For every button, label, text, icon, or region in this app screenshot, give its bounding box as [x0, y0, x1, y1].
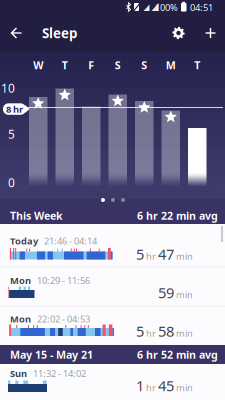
staticText: 45 [158, 376, 174, 395]
staticText: 47 [158, 244, 174, 264]
staticText: 5 [136, 244, 144, 264]
button[interactable]: Mon [0, 305, 225, 345]
staticText: 59 [158, 283, 174, 302]
staticText: F [88, 58, 94, 72]
staticText: May 15 - May 21 [10, 347, 93, 362]
staticText: M [166, 58, 176, 72]
button[interactable] [0, 0, 24, 52]
staticText: 8 hr [6, 103, 23, 115]
button[interactable]: Sun [0, 364, 225, 400]
staticText: 6 hr 52 min avg [137, 347, 218, 362]
staticText: T [194, 58, 200, 72]
staticText: Sleep [42, 24, 77, 42]
staticText: This Week [10, 208, 63, 223]
staticText: 22:02 - 04:53 [37, 313, 90, 325]
staticText: min [176, 327, 193, 339]
staticText: Sun [10, 367, 27, 380]
staticText: min [176, 288, 193, 301]
button[interactable] [0, 0, 24, 52]
staticText: S [115, 58, 121, 72]
staticText: 0 [8, 174, 15, 190]
staticText: Mon [10, 313, 31, 325]
staticText: min [176, 250, 193, 262]
staticText: S [141, 58, 147, 72]
staticText: 04:51 [190, 1, 213, 14]
staticText: 5 [8, 126, 15, 142]
staticText: 21:46 - 04:14 [44, 235, 97, 247]
staticText: 10 [1, 80, 15, 96]
button[interactable]: Mon [0, 266, 225, 305]
staticText: 100% [155, 1, 178, 14]
button[interactable]: Today [0, 224, 225, 266]
staticText: 1 [136, 376, 144, 395]
staticText: min [176, 381, 193, 394]
staticText: 10:29 - 11:56 [37, 274, 90, 287]
staticText: Mon [10, 274, 31, 287]
staticText: 11:32 - 14:02 [33, 367, 86, 380]
staticText: hr [146, 327, 156, 339]
staticText: hr [146, 250, 156, 262]
staticText: 5 [136, 321, 144, 341]
staticText: 6 hr 22 min avg [137, 208, 218, 223]
staticText: 58 [158, 321, 174, 341]
staticText: T [62, 58, 68, 72]
staticText: hr [146, 381, 156, 394]
staticText: Today [10, 235, 38, 247]
button[interactable] [0, 0, 32, 52]
staticText: W [33, 58, 43, 72]
